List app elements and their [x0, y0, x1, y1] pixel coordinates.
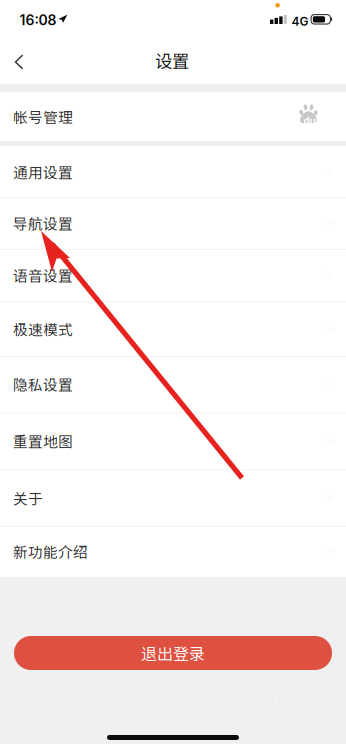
button[interactable]: 重置地图: [0, 412, 346, 470]
staticText: 通用设置: [13, 161, 73, 182]
button[interactable]: 返回: [0, 44, 44, 84]
button[interactable]: 关于: [0, 470, 346, 526]
staticText: 隐私设置: [13, 373, 73, 395]
button[interactable]: 帐号管理: [0, 92, 346, 141]
staticText: 设置: [155, 48, 189, 73]
staticText: 极速模式: [13, 318, 73, 339]
button[interactable]: 退出登录: [14, 636, 332, 670]
staticText: 语音设置: [13, 265, 73, 286]
staticText: 4G: [291, 14, 308, 28]
button[interactable]: 通用设置: [0, 146, 346, 197]
staticText: 16:08: [19, 12, 56, 29]
staticText: du: [304, 113, 316, 128]
staticText: 帐号管理: [13, 106, 73, 127]
staticText: 重置地图: [13, 430, 73, 451]
button[interactable]: 极速模式: [0, 301, 346, 356]
staticText: 关于: [13, 487, 43, 508]
staticText: 新功能介绍: [13, 541, 88, 562]
button[interactable]: 导航设置: [0, 197, 346, 249]
button[interactable]: 语音设置: [0, 249, 346, 301]
button[interactable]: 隐私设置: [0, 356, 346, 412]
button[interactable]: 新功能介绍: [0, 526, 346, 577]
staticText: 导航设置: [13, 213, 73, 234]
staticText: 退出登录: [141, 641, 205, 665]
